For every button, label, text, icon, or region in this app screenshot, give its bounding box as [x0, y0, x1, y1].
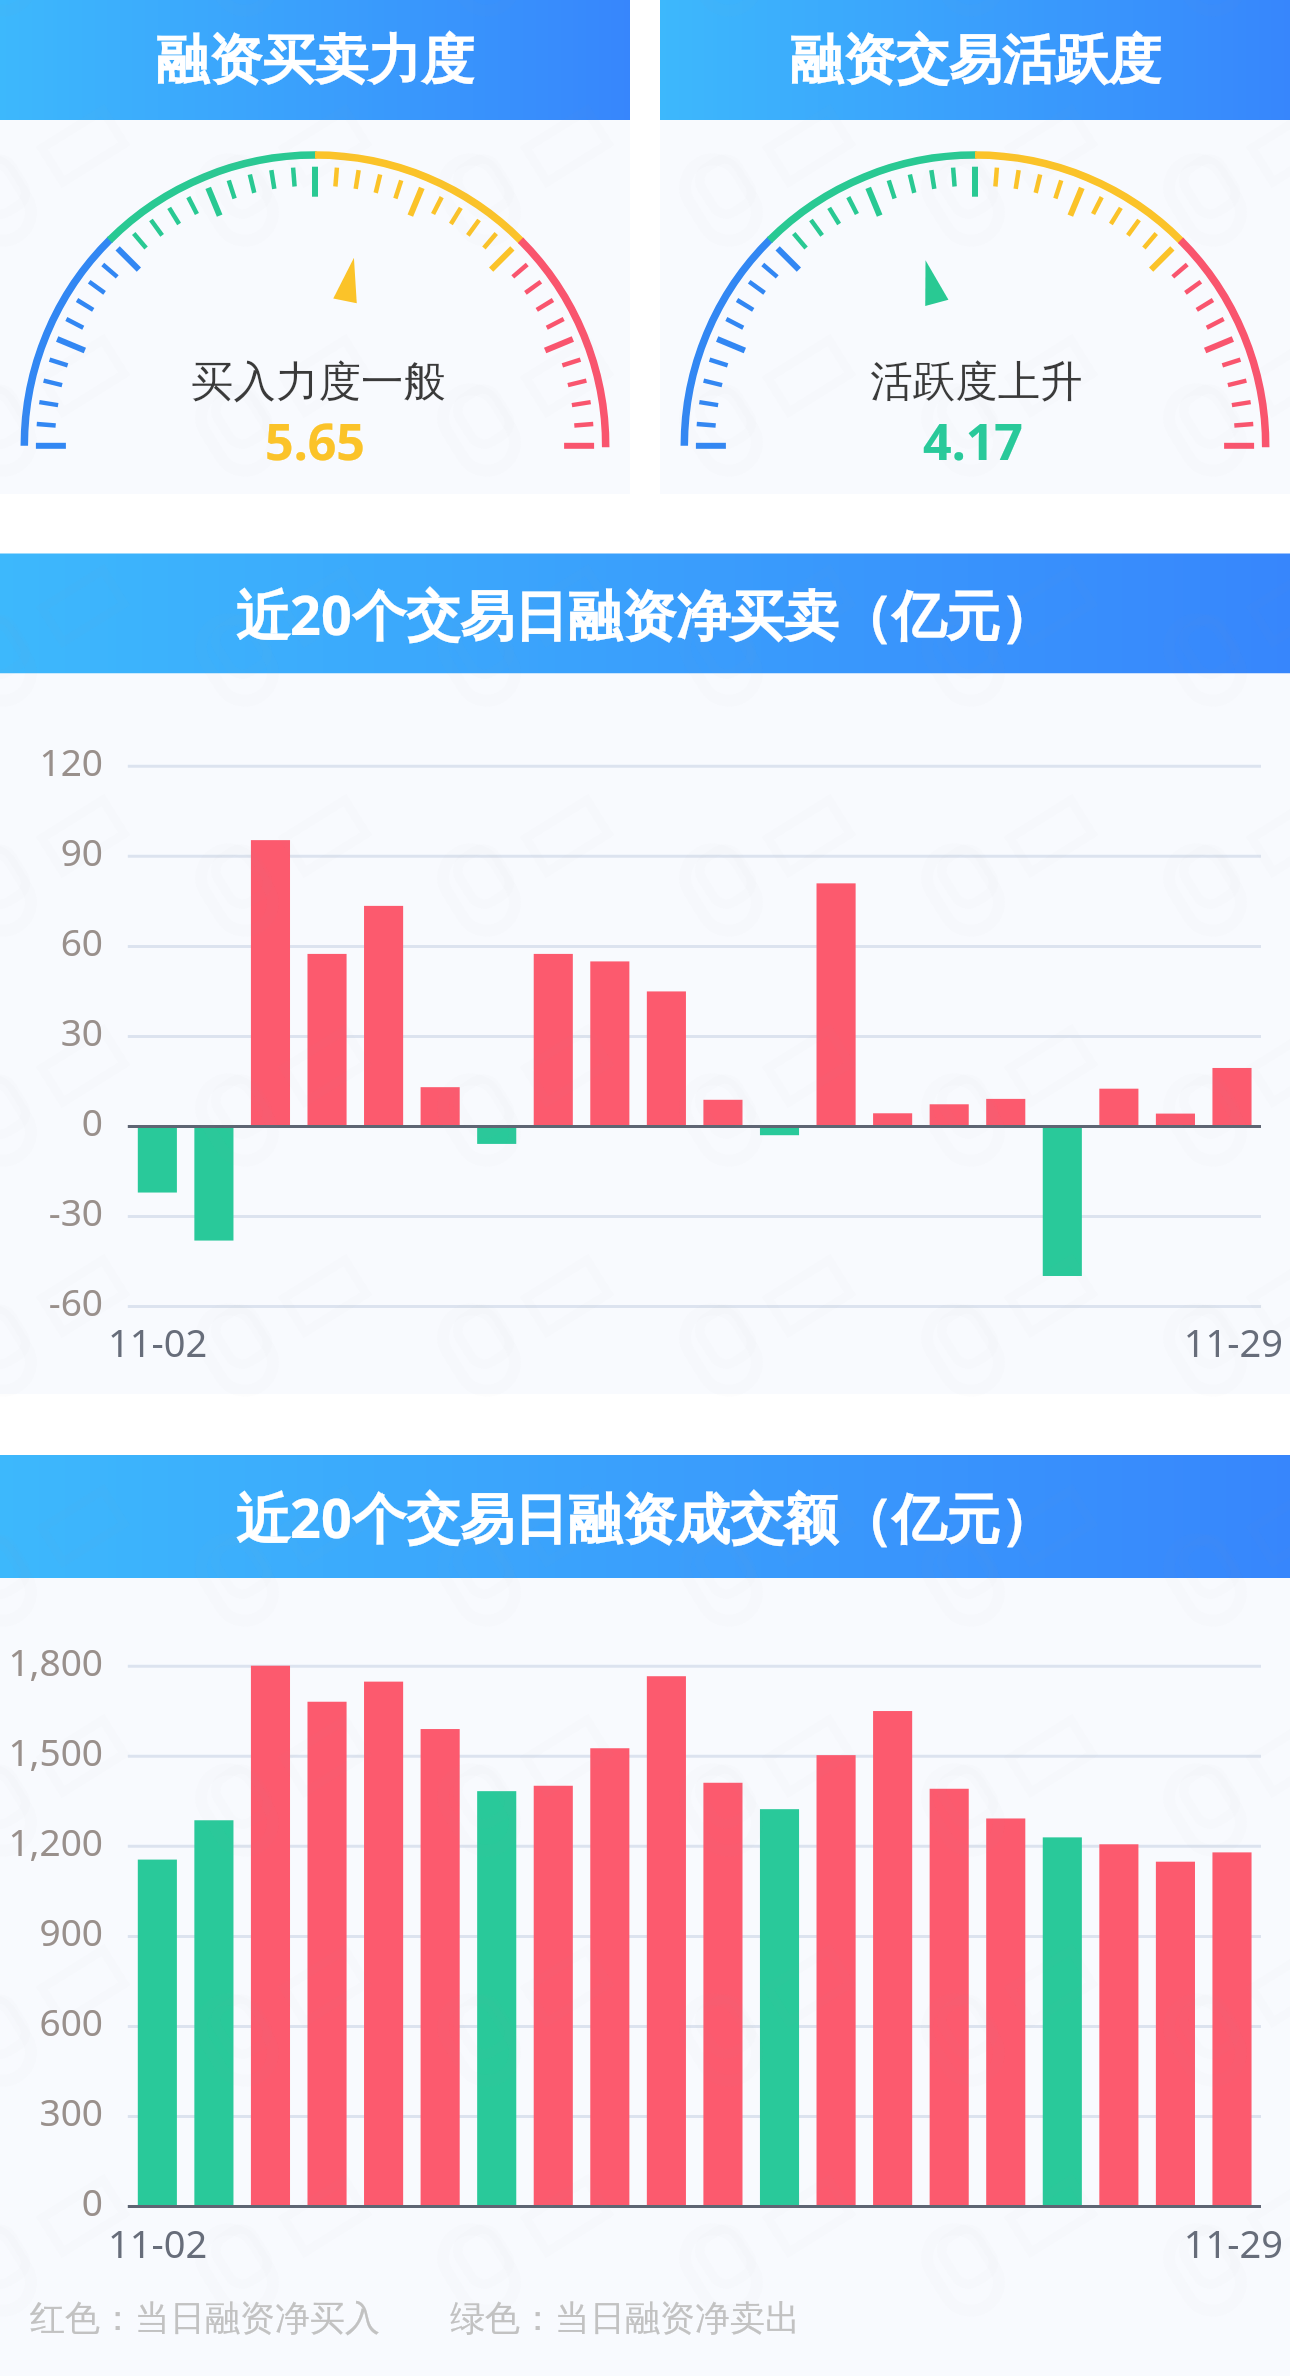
staticText: 30 [60, 1006, 103, 1056]
staticText: 买入力度一般 [191, 355, 446, 409]
staticText: 近20个交易日融资成交额（亿元） [236, 1480, 1054, 1554]
staticText: 4.17 [923, 407, 1023, 475]
button[interactable]: 近20个交易日融资净买卖柱状图 [0, 674, 1290, 1395]
staticText: 600 [39, 1996, 103, 2046]
staticText: 1,500 [8, 1726, 103, 1776]
button[interactable]: 近20个交易日融资净买卖（亿元） [0, 554, 1290, 674]
staticText: 红色：当日融资净买入 绿色：当日融资净卖出 [30, 2293, 800, 2341]
staticText: -60 [48, 1276, 103, 1326]
button[interactable]: 近20个交易日融资成交额柱状图 [0, 1578, 1290, 2238]
staticText: 1,200 [8, 1816, 103, 1866]
button[interactable]: 融资交易活跃度 [660, 0, 1290, 120]
staticText: 0 [81, 1096, 103, 1146]
button[interactable]: 融资交易活跃度 仪表盘 4.17 [660, 120, 1290, 494]
staticText: 120 [39, 736, 103, 786]
staticText: 1,800 [8, 1636, 103, 1686]
staticText: 11-02 [108, 2217, 208, 2269]
staticText: 900 [39, 1906, 103, 1956]
staticText: 5.65 [265, 407, 365, 475]
staticText: 近20个交易日融资净买卖（亿元） [236, 577, 1054, 651]
staticText: 90 [60, 826, 103, 876]
staticText: 活跃度上升 [870, 355, 1083, 409]
staticText: 融资买卖力度 [156, 27, 474, 94]
staticText: 0 [81, 2176, 103, 2226]
staticText: 60 [60, 916, 103, 966]
staticText: 11-29 [1183, 1316, 1283, 1368]
staticText: -30 [48, 1186, 103, 1236]
staticText: 11-29 [1183, 2217, 1283, 2269]
staticText: 11-02 [108, 1316, 208, 1368]
button[interactable]: 融资买卖力度 仪表盘 5.65 [0, 120, 630, 494]
staticText: 300 [39, 2086, 103, 2136]
staticText: 融资交易活跃度 [790, 27, 1161, 94]
button[interactable]: 近20个交易日融资成交额（亿元） [0, 1455, 1290, 1578]
button[interactable]: 融资买卖力度 [0, 0, 630, 120]
